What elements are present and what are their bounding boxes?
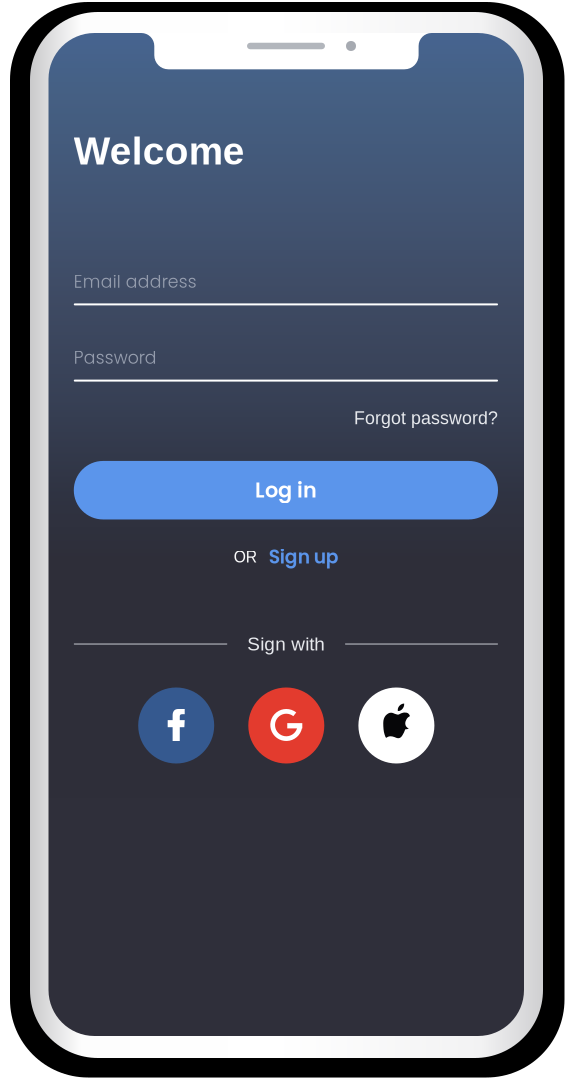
staticText: Password bbox=[74, 346, 157, 370]
button[interactable]: Log in bbox=[74, 461, 498, 519]
staticText: OR bbox=[234, 548, 257, 566]
staticText: Sign up bbox=[269, 544, 339, 570]
button[interactable]: Sign up bbox=[269, 544, 339, 570]
button[interactable]: Forgot password? bbox=[74, 400, 498, 436]
staticText: Forgot password? bbox=[354, 408, 498, 428]
staticText: Sign with bbox=[247, 633, 325, 655]
staticText: Email address bbox=[74, 270, 197, 294]
button[interactable]: Sign in with Google bbox=[248, 687, 324, 763]
button[interactable]: Sign in with Facebook bbox=[138, 687, 214, 763]
staticText: Welcome bbox=[74, 129, 245, 173]
button[interactable]: Sign in with Apple bbox=[358, 687, 434, 763]
staticText: Log in bbox=[255, 476, 317, 505]
